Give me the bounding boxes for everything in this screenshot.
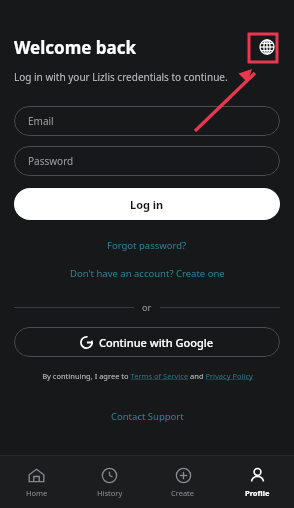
button[interactable]: Email	[14, 106, 280, 136]
staticText: Email	[28, 114, 54, 128]
staticText: History	[97, 488, 123, 498]
staticText: Home	[26, 488, 48, 498]
staticText: Don't have an account? Create one	[70, 267, 225, 280]
button[interactable]: Log in	[14, 188, 280, 220]
button[interactable]: Don't have an account? Create one	[62, 264, 233, 283]
staticText: By continuing, I agree to Terms of Servi…	[42, 371, 253, 381]
staticText: Continue with Google	[99, 335, 214, 350]
button[interactable]: Home	[0, 456, 73, 508]
button[interactable]: Continue with Google	[14, 327, 280, 357]
button[interactable]: Create	[146, 456, 220, 508]
button[interactable]: Contact Support	[103, 407, 192, 426]
staticText: Profile	[245, 488, 270, 498]
staticText: Forgot password?	[107, 239, 187, 252]
button[interactable]: Change language	[254, 34, 280, 60]
staticText: Log in	[130, 197, 164, 212]
staticText: Create	[171, 488, 195, 498]
button[interactable]: History	[73, 456, 146, 508]
staticText: Log in with your Lizlis credentials to c…	[14, 70, 228, 84]
staticText: or	[142, 301, 152, 313]
button[interactable]: Profile	[220, 456, 294, 508]
staticText: Password	[28, 154, 74, 168]
staticText: Contact Support	[111, 410, 184, 423]
button[interactable]: Forgot password?	[99, 236, 195, 255]
button[interactable]: Password	[14, 146, 280, 176]
staticText: Welcome back	[14, 36, 137, 59]
